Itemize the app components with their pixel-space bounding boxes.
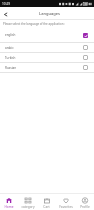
staticText: category	[21, 205, 35, 209]
button[interactable]: Cart	[37, 194, 56, 210]
button[interactable]: Favorites	[56, 194, 75, 210]
button[interactable]: Turkish	[0, 53, 94, 62]
staticText: arabic	[5, 46, 14, 50]
staticText: Profile	[80, 205, 90, 209]
button[interactable]: Back	[1, 10, 10, 19]
staticText: Please select the language of the applic…	[3, 22, 66, 26]
staticText: english	[5, 33, 16, 37]
staticText: Turkish	[5, 56, 16, 60]
button[interactable]: Home	[0, 194, 18, 210]
staticText: Russian	[5, 66, 17, 70]
staticText: 10:29	[2, 2, 11, 6]
button[interactable]: category	[18, 194, 37, 210]
button[interactable]: Russian	[0, 63, 94, 72]
button[interactable]: english	[0, 28, 94, 42]
button[interactable]: Profile	[75, 194, 94, 210]
staticText: Languages	[39, 11, 60, 16]
staticText: Cart	[43, 205, 50, 209]
staticText: Favorites	[59, 205, 73, 209]
button[interactable]: arabic	[0, 43, 94, 52]
staticText: Home	[4, 205, 14, 209]
